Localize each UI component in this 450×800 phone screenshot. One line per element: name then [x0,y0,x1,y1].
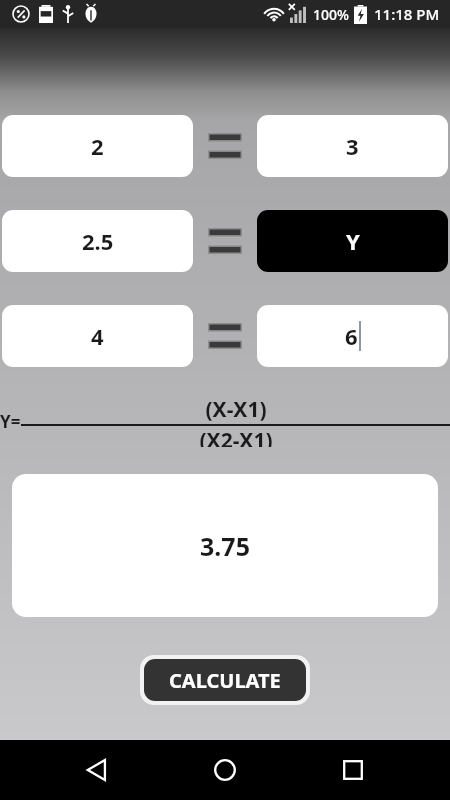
staticText: (X-X1) [205,395,267,424]
button[interactable]: Back [66,740,128,800]
button[interactable]: Home [194,740,256,800]
button[interactable]: 6 [257,305,448,367]
staticText: 6 [345,321,358,351]
button[interactable]: 4 [2,305,193,367]
button[interactable]: CALCULATE [144,659,306,701]
staticText: Y= [0,410,21,433]
button[interactable]: 2.5 [2,210,193,272]
staticText: CALCULATE [169,667,281,694]
staticText: 2.5 [82,226,114,256]
staticText: 4 [91,321,104,351]
staticText: 3.75 [200,529,250,563]
button[interactable]: Y [257,210,448,272]
button[interactable]: Recent apps [322,740,384,800]
button[interactable]: 2 [2,115,193,177]
staticText: (X2-X1) [199,426,273,447]
staticText: 3 [346,131,359,161]
staticText: 100% [313,5,349,24]
button[interactable]: 3 [257,115,448,177]
staticText: 2 [91,131,104,161]
staticText: Y [346,226,360,256]
staticText: 11:18 PM [374,4,440,24]
button[interactable]: 3.75 [12,474,438,617]
